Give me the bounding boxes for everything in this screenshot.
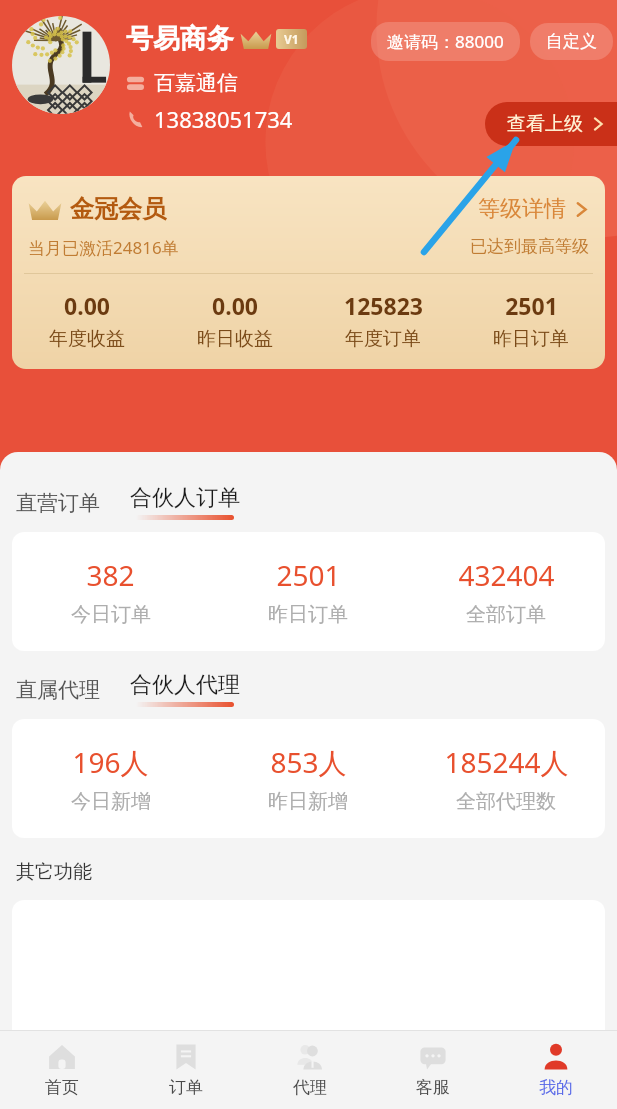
staticText: 我的 xyxy=(539,1077,573,1098)
button[interactable]: 订单 xyxy=(124,1031,248,1109)
staticText: 代理 xyxy=(293,1077,327,1098)
staticText: 号易商务 xyxy=(126,22,234,56)
button[interactable]: 432404 xyxy=(407,556,605,627)
button[interactable]: 自定义 xyxy=(530,23,613,60)
button[interactable]: 2501 xyxy=(209,556,407,627)
button[interactable]: 金冠会员 xyxy=(12,176,605,369)
button[interactable]: 0.00 xyxy=(161,290,309,351)
staticText: 2501 xyxy=(505,290,558,321)
button[interactable]: 我的 xyxy=(494,1031,617,1109)
button[interactable]: 125823 xyxy=(309,290,457,351)
button[interactable]: 2501 xyxy=(457,290,605,351)
button[interactable]: 853人 xyxy=(209,743,407,814)
staticText: 邀请码：88000 xyxy=(387,30,504,53)
staticText: 已达到最高等级 xyxy=(470,236,589,257)
staticText: 382 xyxy=(86,556,135,594)
button[interactable]: 邀请码：88000 xyxy=(371,22,520,61)
button[interactable]: 客服 xyxy=(371,1031,494,1109)
staticText: 853人 xyxy=(270,743,347,781)
staticText: 其它功能 xyxy=(16,860,92,884)
staticText: 185244人 xyxy=(444,743,569,781)
staticText: 昨日收益 xyxy=(197,327,273,351)
staticText: 金冠会员 xyxy=(70,194,166,224)
staticText: 首页 xyxy=(45,1077,79,1098)
staticText: 百嘉通信 xyxy=(154,70,238,96)
staticText: 196人 xyxy=(72,743,149,781)
staticText: 订单 xyxy=(169,1077,203,1098)
staticText: 客服 xyxy=(416,1077,450,1098)
staticText: 直属代理 xyxy=(16,677,100,703)
staticText: 昨日订单 xyxy=(493,327,569,351)
staticText: 13838051734 xyxy=(154,104,293,134)
staticText: V1 xyxy=(284,31,299,47)
staticText: 年度订单 xyxy=(345,327,421,351)
staticText: 合伙人代理 xyxy=(130,671,240,699)
staticText: 年度收益 xyxy=(49,327,125,351)
staticText: 合伙人订单 xyxy=(130,484,240,512)
button[interactable]: 查看上级 xyxy=(485,102,617,146)
staticText: 全部代理数 xyxy=(456,789,556,814)
button[interactable]: 合伙人订单 xyxy=(128,484,242,520)
staticText: 全部订单 xyxy=(466,602,546,627)
staticText: 0.00 xyxy=(212,290,258,321)
button[interactable]: 382 xyxy=(12,556,209,627)
staticText: 等级详情 xyxy=(478,195,566,223)
staticText: 自定义 xyxy=(546,31,597,52)
button[interactable]: 代理 xyxy=(248,1031,371,1109)
staticText: 直营订单 xyxy=(16,490,100,516)
button[interactable]: Avatar xyxy=(12,16,110,114)
button[interactable]: 196人 xyxy=(12,743,209,814)
staticText: 今日新增 xyxy=(71,789,151,814)
staticText: 125823 xyxy=(344,290,423,321)
button[interactable]: 直营订单 xyxy=(14,486,102,520)
button[interactable]: 首页 xyxy=(0,1031,124,1109)
staticText: 今日订单 xyxy=(71,602,151,627)
staticText: 昨日新增 xyxy=(268,789,348,814)
staticText: 0.00 xyxy=(64,290,110,321)
button[interactable]: 185244人 xyxy=(407,743,605,814)
button[interactable]: 直属代理 xyxy=(14,673,102,707)
staticText: 2501 xyxy=(276,556,341,594)
button[interactable]: 0.00 xyxy=(12,290,161,351)
staticText: 查看上级 xyxy=(507,112,583,136)
staticText: 昨日订单 xyxy=(268,602,348,627)
staticText: 当月已激活24816单 xyxy=(28,236,179,259)
staticText: 432404 xyxy=(458,556,555,594)
button[interactable]: 合伙人代理 xyxy=(128,671,242,707)
